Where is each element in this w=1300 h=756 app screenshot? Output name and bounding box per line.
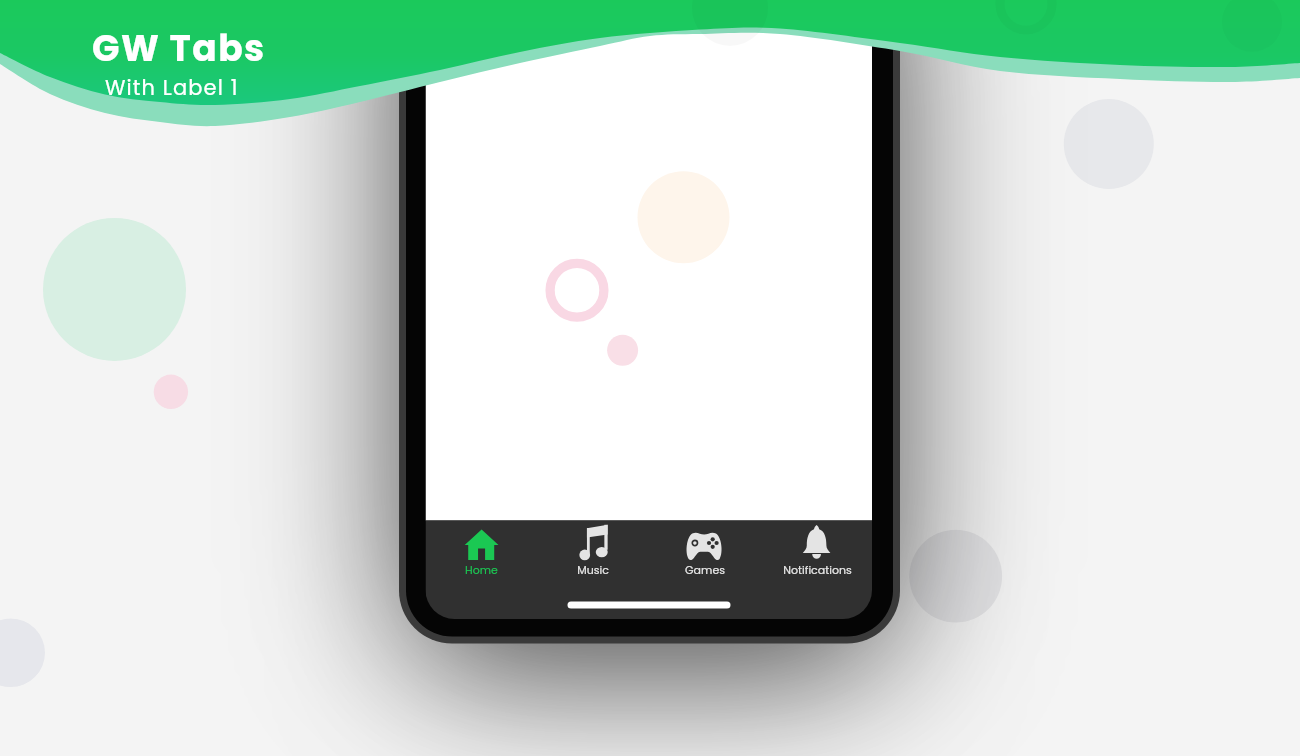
button[interactable]: Games xyxy=(649,521,761,620)
button[interactable]: Notifications xyxy=(761,521,873,620)
staticText: Home xyxy=(465,562,498,577)
staticText: Music xyxy=(577,562,609,577)
staticText: Games xyxy=(685,562,725,577)
staticText: With Label 1 xyxy=(105,73,239,102)
button[interactable]: Home xyxy=(426,521,537,620)
staticText: Notifications xyxy=(783,562,852,577)
staticText: GW Tabs xyxy=(92,23,266,73)
button[interactable]: Music xyxy=(537,521,649,620)
